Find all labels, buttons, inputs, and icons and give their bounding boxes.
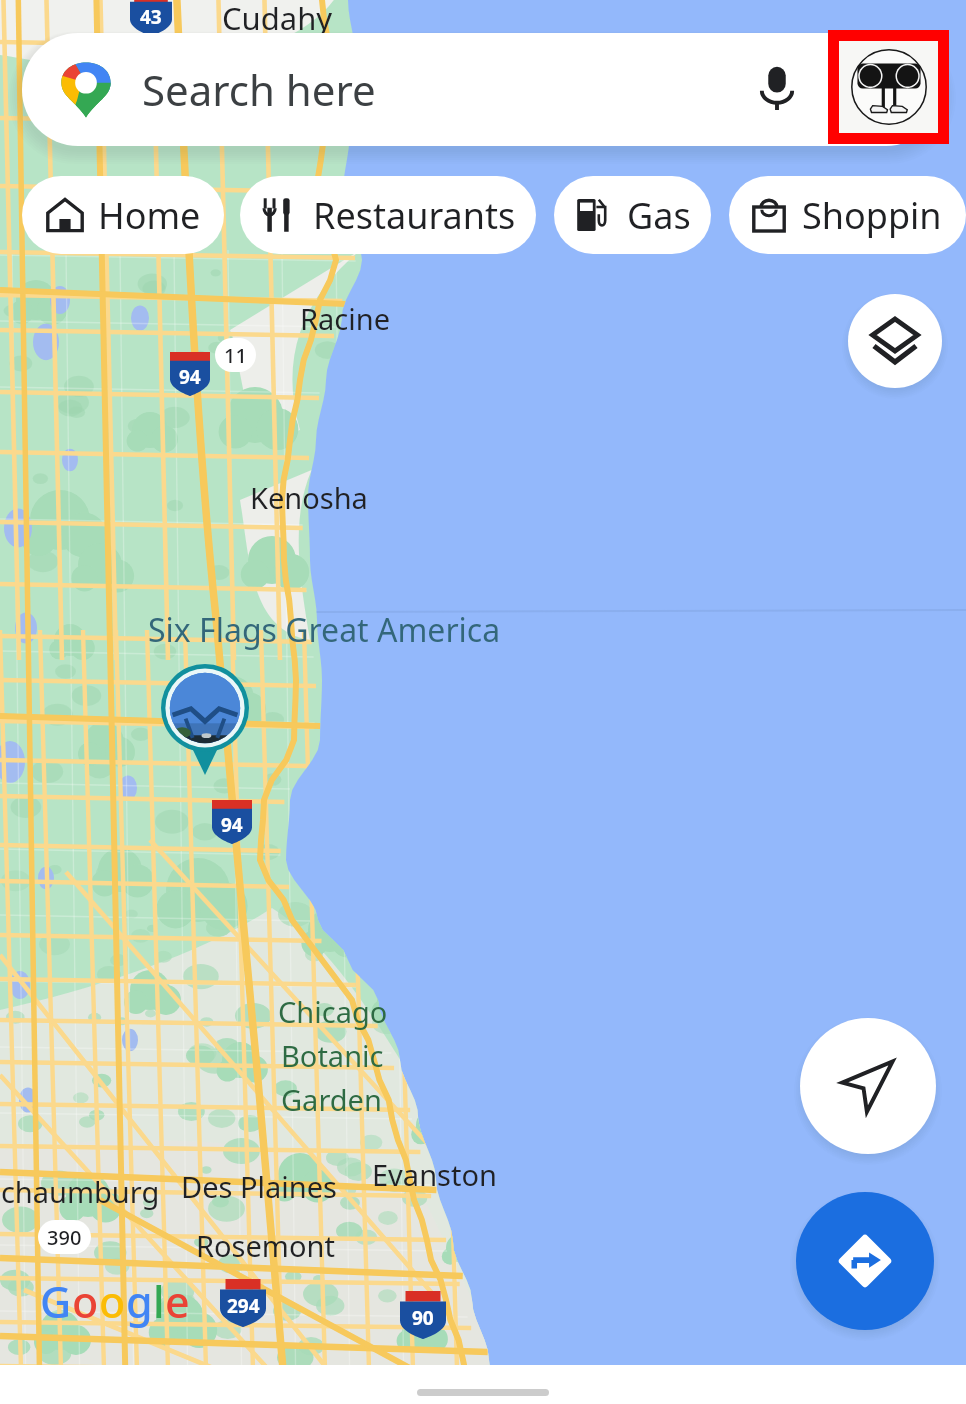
staticText: 11 (224, 342, 247, 369)
button[interactable]: Directions (796, 1192, 934, 1330)
staticText: Home (98, 191, 201, 240)
staticText: 90 (412, 1305, 434, 1331)
staticText: Botanic (281, 1036, 384, 1075)
staticText: Six Flags Great America (148, 608, 501, 652)
staticText: Chicago (278, 992, 388, 1031)
button[interactable]: Search here (22, 33, 942, 146)
staticText: Kenosha (250, 478, 368, 517)
staticText: schaumburg (0, 1172, 160, 1211)
staticText: Search here (142, 61, 376, 118)
staticText: Rosemont (196, 1226, 335, 1265)
staticText: e (165, 1272, 190, 1331)
staticText: g (126, 1272, 153, 1331)
staticText: o (99, 1272, 126, 1331)
button[interactable]: Shopping (729, 176, 966, 254)
staticText: 390 (47, 1224, 82, 1251)
staticText: Restaurants (313, 191, 516, 240)
staticText: o (72, 1272, 99, 1331)
staticText: Racine (300, 299, 390, 338)
staticText: Evanston (372, 1155, 497, 1194)
staticText: 94 (179, 364, 201, 390)
staticText: Garden (281, 1080, 382, 1119)
staticText: Cudahy (222, 0, 333, 39)
button[interactable]: Home (22, 176, 224, 254)
staticText: G (40, 1272, 72, 1331)
staticText: Shopping (802, 191, 946, 240)
staticText: 294 (227, 1293, 260, 1319)
staticText: Des Plaines (181, 1167, 337, 1206)
staticText: 43 (140, 4, 162, 30)
button[interactable]: Restaurants (240, 176, 536, 254)
button[interactable]: Voice search (744, 55, 810, 121)
button[interactable]: My location (800, 1018, 936, 1154)
staticText: Gas (627, 191, 691, 240)
button[interactable]: Layers (848, 294, 942, 388)
staticText: l (153, 1272, 165, 1331)
staticText: 94 (221, 812, 243, 838)
button[interactable]: Account (828, 30, 949, 144)
button[interactable]: Gas (554, 176, 711, 254)
